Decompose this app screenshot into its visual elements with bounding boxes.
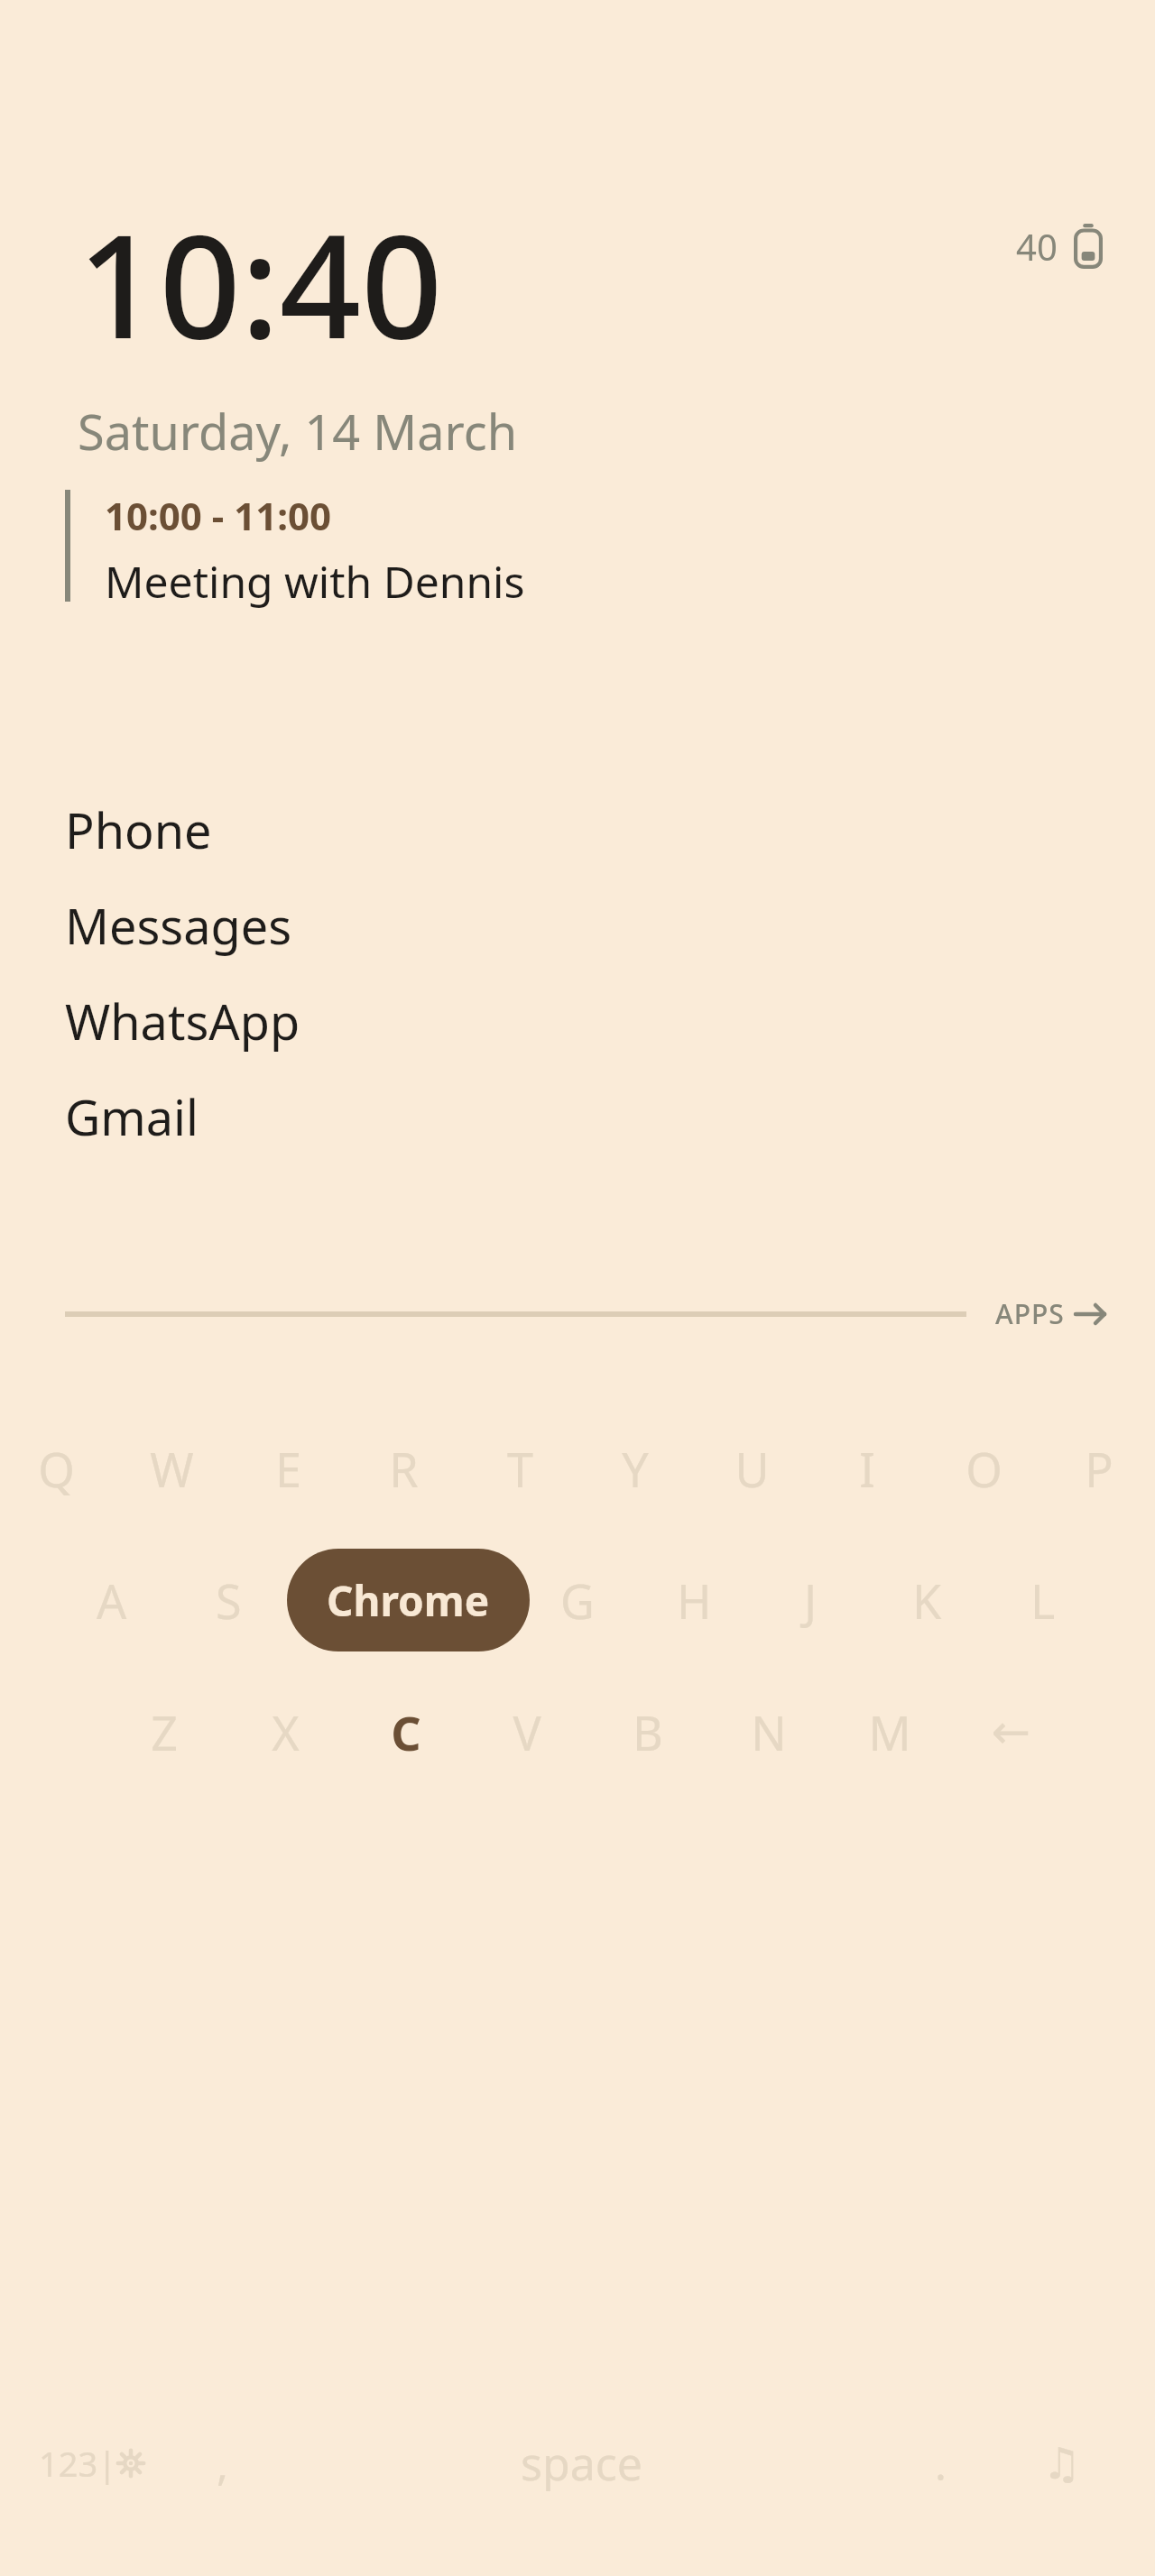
staticText: P xyxy=(1085,1437,1113,1501)
staticText: 40 xyxy=(1016,222,1058,271)
staticText: V xyxy=(513,1700,541,1764)
staticText: 10:00 - 11:00 xyxy=(105,490,332,541)
staticText: A xyxy=(97,1569,127,1633)
staticText: G xyxy=(560,1569,595,1633)
button[interactable]: Phone xyxy=(0,782,1155,878)
staticText: APPS xyxy=(995,1295,1065,1332)
staticText: Y xyxy=(622,1437,649,1501)
button[interactable]: Messages xyxy=(0,878,1155,973)
button[interactable]: Gmail xyxy=(0,1069,1155,1164)
button[interactable]: S xyxy=(199,1547,257,1653)
staticText: Chrome xyxy=(327,1572,490,1629)
staticText: N xyxy=(751,1700,787,1764)
button[interactable]: K xyxy=(898,1547,956,1653)
button[interactable] xyxy=(432,1547,490,1653)
staticText: Saturday, 14 March xyxy=(78,398,518,465)
button[interactable]: Y xyxy=(606,1415,664,1522)
staticText: Phone xyxy=(65,796,212,863)
staticText: Meeting with Dennis xyxy=(105,552,525,611)
staticText: B xyxy=(633,1700,663,1764)
staticText: ♫ xyxy=(1042,2438,1082,2489)
button[interactable]: Q xyxy=(27,1415,85,1522)
button[interactable]: E xyxy=(259,1415,317,1522)
button[interactable]: V xyxy=(498,1679,556,1785)
staticText: K xyxy=(912,1569,942,1633)
button[interactable]: G xyxy=(549,1547,606,1653)
staticText: L xyxy=(1030,1569,1056,1633)
staticText: 10:40 xyxy=(78,186,443,380)
button[interactable]: M xyxy=(861,1679,919,1785)
staticText: J xyxy=(804,1569,818,1633)
staticText: H xyxy=(677,1569,712,1633)
staticText: O xyxy=(966,1437,1003,1501)
button[interactable]: A xyxy=(83,1547,141,1653)
button[interactable]: L xyxy=(1014,1547,1072,1653)
button[interactable]: O xyxy=(955,1415,1012,1522)
button[interactable]: Numbers and keyboard settings xyxy=(32,2396,150,2531)
staticText: Z xyxy=(151,1700,178,1764)
staticText: S xyxy=(216,1569,242,1633)
button[interactable]: C xyxy=(377,1679,435,1785)
staticText: WhatsApp xyxy=(65,988,300,1054)
staticText: Q xyxy=(38,1437,75,1501)
button[interactable]: T xyxy=(491,1415,549,1522)
staticText: , xyxy=(217,2434,228,2493)
button[interactable]: H xyxy=(665,1547,723,1653)
button[interactable]: N xyxy=(740,1679,798,1785)
staticText: R xyxy=(389,1437,419,1501)
button[interactable]: WhatsApp xyxy=(0,973,1155,1069)
staticText: M xyxy=(868,1700,911,1764)
staticText: X xyxy=(272,1700,300,1764)
staticText: . xyxy=(935,2434,947,2493)
staticText: Gmail xyxy=(65,1083,199,1150)
button[interactable] xyxy=(316,1547,374,1653)
button[interactable]: J xyxy=(781,1547,839,1653)
staticText: E xyxy=(275,1437,301,1501)
button[interactable]: B xyxy=(619,1679,677,1785)
button[interactable]: Battery 40 percent xyxy=(1016,222,1103,271)
staticText: ← xyxy=(991,1705,1030,1760)
button[interactable]: R xyxy=(374,1415,432,1522)
button[interactable]: APPS xyxy=(995,1295,1104,1332)
button[interactable]: X xyxy=(256,1679,314,1785)
staticText: W xyxy=(150,1437,194,1501)
staticText: U xyxy=(735,1437,770,1501)
button[interactable]: P xyxy=(1070,1415,1128,1522)
staticText: Messages xyxy=(65,892,291,959)
button[interactable]: W xyxy=(143,1415,200,1522)
staticText: 123| xyxy=(39,2440,117,2487)
staticText: space xyxy=(521,2433,642,2494)
button[interactable]: U xyxy=(723,1415,781,1522)
button[interactable]: Z xyxy=(135,1679,193,1785)
button[interactable]: 10:00 - 11:00 xyxy=(65,490,525,611)
staticText: C xyxy=(391,1700,421,1764)
button[interactable]: ← xyxy=(982,1679,1039,1785)
staticText: I xyxy=(859,1437,875,1501)
button[interactable]: Chrome xyxy=(287,1549,530,1651)
button[interactable]: I xyxy=(838,1415,896,1522)
staticText: T xyxy=(507,1437,533,1501)
